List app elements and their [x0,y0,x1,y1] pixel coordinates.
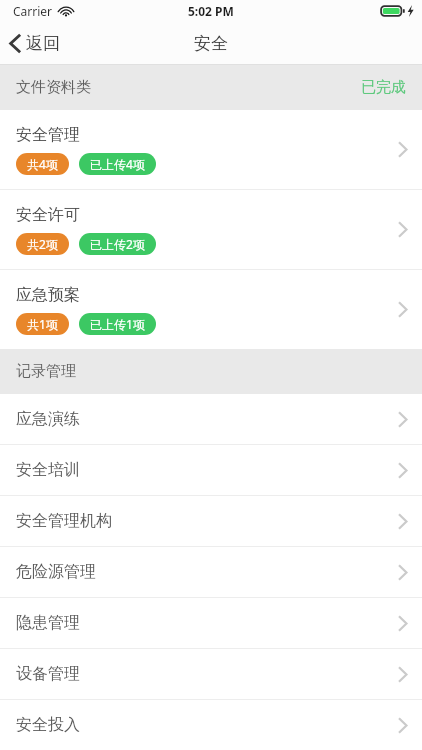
other: 打开 [397,220,408,239]
staticText: 设备管理 [16,664,397,684]
staticText: 5:02 PM [188,3,234,19]
staticText: 文件资料类 [16,78,91,97]
staticText: 危险源管理 [16,562,397,582]
staticText: 共4项 [27,156,58,172]
staticText: Carrier [13,3,53,19]
staticText: 安全管理机构 [16,511,397,531]
staticText: 安全投入 [16,715,397,735]
button[interactable]: 安全管理机构 [0,496,422,546]
staticText: 共2项 [27,236,58,252]
staticText: 应急预案 [16,285,80,305]
button[interactable]: 危险源管理 [0,547,422,597]
other: 打开 [397,716,408,735]
staticText: 返回 [26,33,60,54]
other: 打开 [397,410,408,429]
staticText: 共1项 [27,316,58,332]
staticText: 已上传2项 [90,236,145,252]
staticText: 已完成 [361,78,406,97]
other: 打开 [397,665,408,684]
other: 打开 [397,461,408,480]
staticText: 安全 [194,33,228,54]
button[interactable]: 应急演练 [0,394,422,444]
staticText: 已上传4项 [90,156,145,172]
button[interactable]: 安全投入 [0,700,422,750]
button[interactable]: 应急预案 [0,270,422,349]
button[interactable]: 设备管理 [0,649,422,699]
staticText: 已上传1项 [90,316,145,332]
staticText: 隐患管理 [16,613,397,633]
staticText: 记录管理 [16,362,76,381]
staticText: 安全管理 [16,125,80,145]
other: 打开 [397,563,408,582]
button[interactable]: 安全管理 [0,110,422,189]
button[interactable]: 安全许可 [0,190,422,269]
other: 打开 [397,300,408,319]
other: 打开 [397,140,408,159]
staticText: 安全许可 [16,205,80,225]
button[interactable]: 隐患管理 [0,598,422,648]
button[interactable]: 安全培训 [0,445,422,495]
staticText: 安全培训 [16,460,397,480]
other: 打开 [397,614,408,633]
other: 打开 [397,512,408,531]
staticText: 应急演练 [16,409,397,429]
button[interactable]: 返回 [0,22,74,65]
